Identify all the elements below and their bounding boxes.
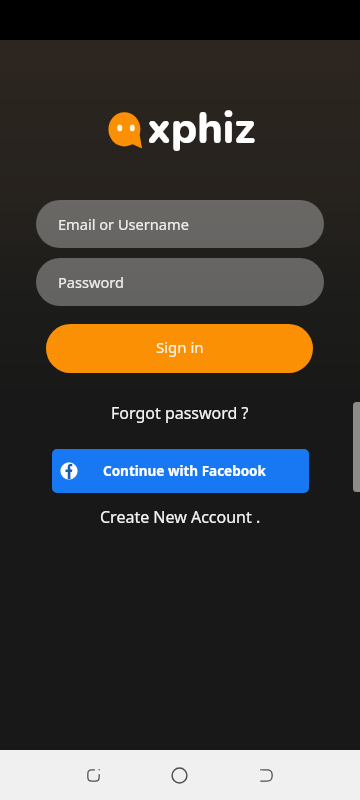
staticText: Sign in — [156, 337, 204, 357]
button[interactable]: Back — [223, 750, 310, 800]
button[interactable]: Sign in — [46, 324, 313, 373]
staticText: Email or Username — [58, 214, 189, 234]
staticText: Create New Account . — [100, 506, 261, 528]
button[interactable]: Create New Account . — [92, 501, 269, 533]
button[interactable]: Recent apps — [50, 750, 137, 800]
button[interactable]: Home — [136, 750, 223, 800]
staticText: Password — [58, 272, 125, 292]
staticText: Forgot password ? — [111, 402, 249, 424]
staticText: xphiz — [147, 100, 256, 159]
button[interactable]: Forgot password ? — [103, 397, 257, 429]
button[interactable]: Email or Username — [36, 200, 324, 248]
button[interactable]: Password — [36, 258, 324, 306]
button[interactable]: Continue with Facebook — [52, 449, 309, 493]
staticText: Continue with Facebook — [103, 462, 266, 480]
